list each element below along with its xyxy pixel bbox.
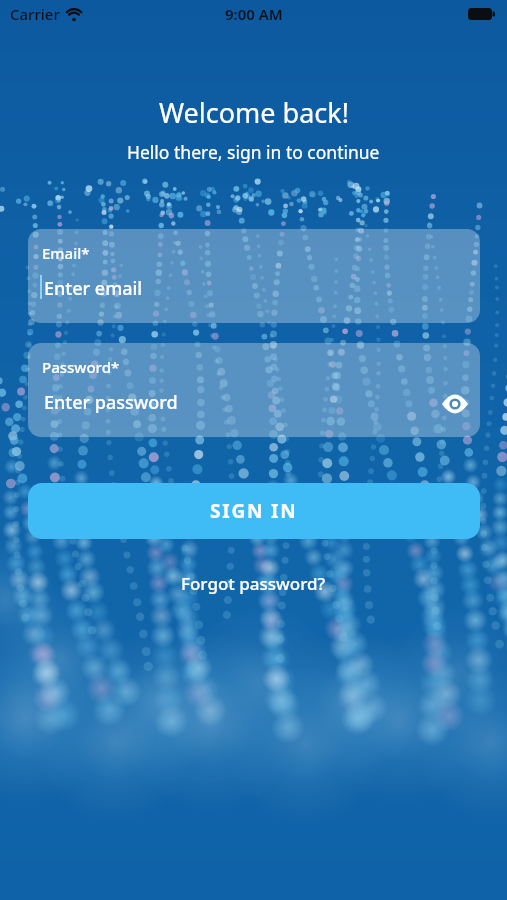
staticText: Email*: [42, 243, 90, 263]
staticText: Carrier: [10, 4, 60, 24]
staticText: Hello there, sign in to continue: [127, 140, 380, 164]
button[interactable]: [442, 395, 468, 413]
staticText: 9:00 AM: [225, 4, 283, 24]
staticText: Password*: [42, 357, 120, 377]
staticText: SIGN IN: [210, 498, 298, 524]
button[interactable]: SIGN IN: [28, 483, 480, 539]
button[interactable]: Password*: [28, 343, 480, 437]
button[interactable]: Email*: [28, 229, 480, 323]
staticText: Enter password: [44, 390, 178, 415]
staticText: Enter email: [44, 276, 143, 301]
staticText: Welcome back!: [159, 94, 349, 131]
staticText: Forgot password?: [181, 572, 326, 595]
button[interactable]: Forgot password?: [181, 572, 326, 595]
